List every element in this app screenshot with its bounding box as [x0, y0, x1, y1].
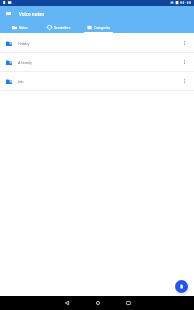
button[interactable]: Recent apps — [113, 296, 144, 310]
staticText: Reminders — [54, 26, 71, 30]
staticText: Hobby — [18, 41, 30, 46]
button[interactable]: Open navigation drawer — [4, 9, 13, 18]
button[interactable]: Reminders — [47, 25, 71, 30]
button[interactable]: More options — [177, 55, 191, 69]
button[interactable]: Notes — [12, 25, 28, 30]
staticText: A family — [18, 60, 32, 65]
staticText: Categories — [94, 26, 111, 30]
staticText: Job — [18, 79, 24, 84]
button[interactable]: More options — [177, 74, 191, 88]
staticText: Notes — [19, 26, 28, 30]
button[interactable]: Home — [82, 296, 113, 310]
button[interactable]: New note — [175, 280, 188, 293]
button[interactable]: Hobby — [0, 34, 194, 52]
button[interactable]: Job — [0, 72, 194, 90]
button[interactable]: Categories — [87, 25, 111, 30]
button[interactable]: More options — [177, 36, 191, 50]
button[interactable]: Back — [51, 296, 82, 310]
button[interactable]: A family — [0, 53, 194, 71]
staticText: Voice notes — [19, 11, 45, 17]
